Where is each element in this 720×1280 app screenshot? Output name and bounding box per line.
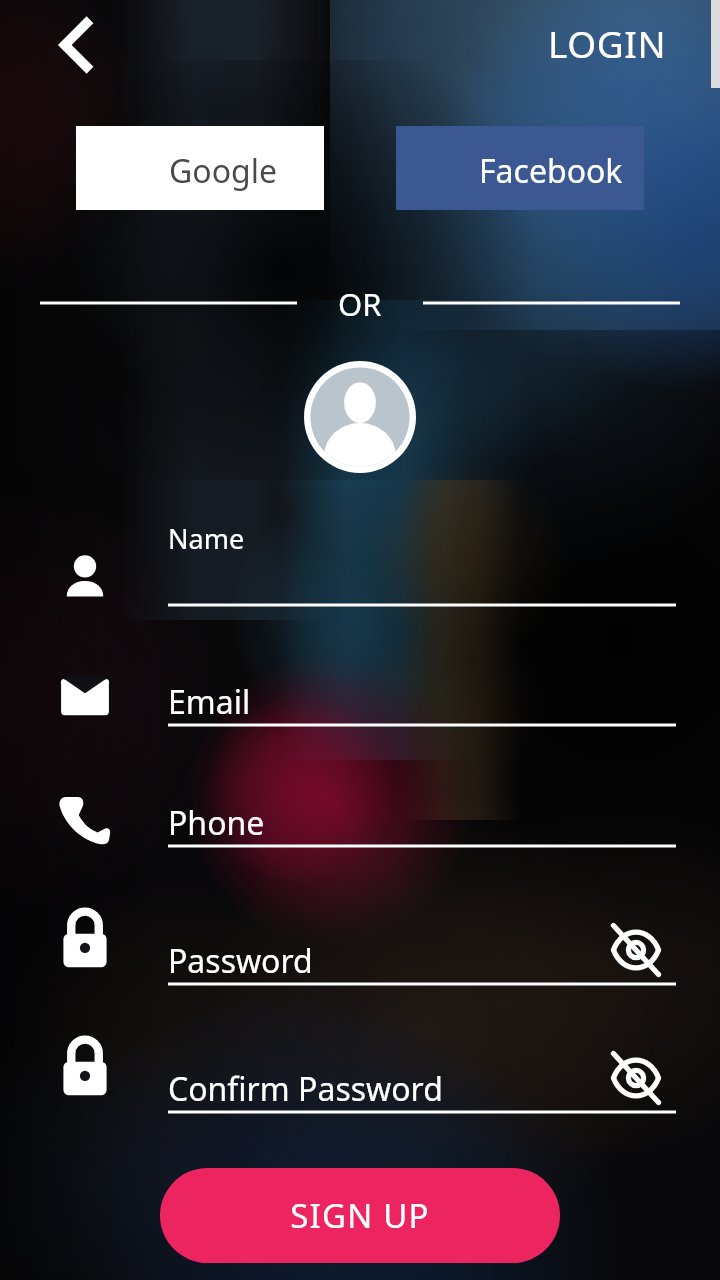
button[interactable]: Confirm Password <box>168 1066 676 1112</box>
staticText: Google <box>169 149 278 193</box>
button[interactable]: Profile photo <box>304 361 416 473</box>
button[interactable]: Email <box>168 679 676 725</box>
button[interactable]: Password <box>168 938 676 984</box>
button[interactable]: Back <box>40 14 108 78</box>
staticText: Name <box>168 520 245 557</box>
button[interactable]: Phone <box>168 800 676 846</box>
button[interactable]: LOGIN <box>528 12 686 74</box>
button[interactable]: Google <box>76 126 324 210</box>
button[interactable]: Name <box>168 520 676 606</box>
staticText: OR <box>338 283 382 325</box>
button[interactable]: Facebook <box>396 126 644 210</box>
button[interactable]: Show confirm password <box>606 1048 666 1108</box>
staticText: LOGIN <box>548 18 667 68</box>
staticText: Confirm Password <box>168 1067 443 1111</box>
staticText: Facebook <box>479 149 623 193</box>
button[interactable]: Show password <box>606 920 666 980</box>
button[interactable]: SIGN UP <box>160 1168 560 1263</box>
staticText: SIGN UP <box>290 1193 430 1238</box>
staticText: Password <box>168 939 313 983</box>
staticText: Email <box>168 680 251 724</box>
staticText: Phone <box>168 801 265 845</box>
